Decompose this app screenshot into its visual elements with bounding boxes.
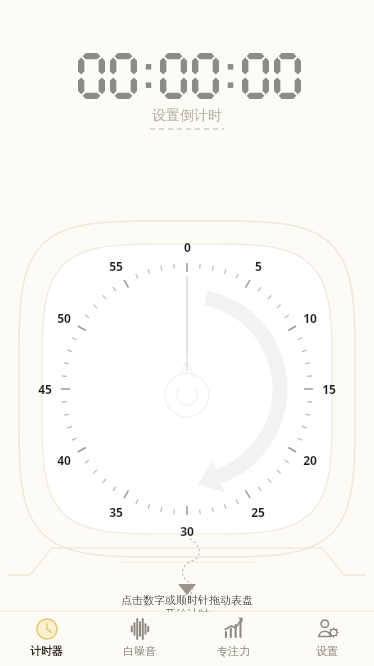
staticText: 5 [255, 258, 262, 274]
button[interactable]: 40 [50, 452, 78, 468]
button[interactable]: 50 [50, 310, 78, 326]
staticText: 设置 [316, 644, 338, 658]
button[interactable]: 白噪音 [93, 612, 186, 666]
staticText: 10 [303, 310, 317, 326]
staticText: 点击数字或顺时针拖动表盘 [121, 593, 253, 607]
button[interactable]: 20 [296, 452, 324, 468]
button[interactable]: 设置倒计时 [152, 107, 222, 125]
button[interactable]: 0 [173, 239, 201, 255]
staticText: 设置倒计时 [152, 107, 222, 125]
button[interactable]: 计时器 [0, 612, 93, 666]
button[interactable]: 35 [102, 504, 130, 520]
staticText: 25 [251, 504, 265, 520]
button[interactable]: 专注力 [186, 612, 280, 666]
staticText: 20 [303, 452, 317, 468]
staticText: 开始计时 [165, 607, 209, 621]
staticText: 40 [57, 452, 71, 468]
button[interactable]: 5 [244, 258, 272, 274]
staticText: 50 [57, 310, 71, 326]
button[interactable]: 25 [244, 504, 272, 520]
button[interactable]: 设置 [280, 612, 374, 666]
staticText: 计时器 [30, 644, 63, 658]
button[interactable]: 15 [315, 381, 343, 397]
button[interactable]: 55 [102, 258, 130, 274]
staticText: 30 [180, 523, 194, 539]
staticText: 15 [322, 381, 336, 397]
button[interactable]: 30 [173, 523, 201, 539]
staticText: 0 [184, 239, 191, 255]
staticText: 55 [109, 258, 123, 274]
staticText: 45 [38, 381, 52, 397]
staticText: 35 [109, 504, 123, 520]
button[interactable] [0, 50, 374, 102]
button[interactable]: 10 [296, 310, 324, 326]
staticText: 白噪音 [123, 644, 156, 658]
staticText: 专注力 [217, 644, 250, 658]
button[interactable]: 45 [31, 381, 59, 397]
